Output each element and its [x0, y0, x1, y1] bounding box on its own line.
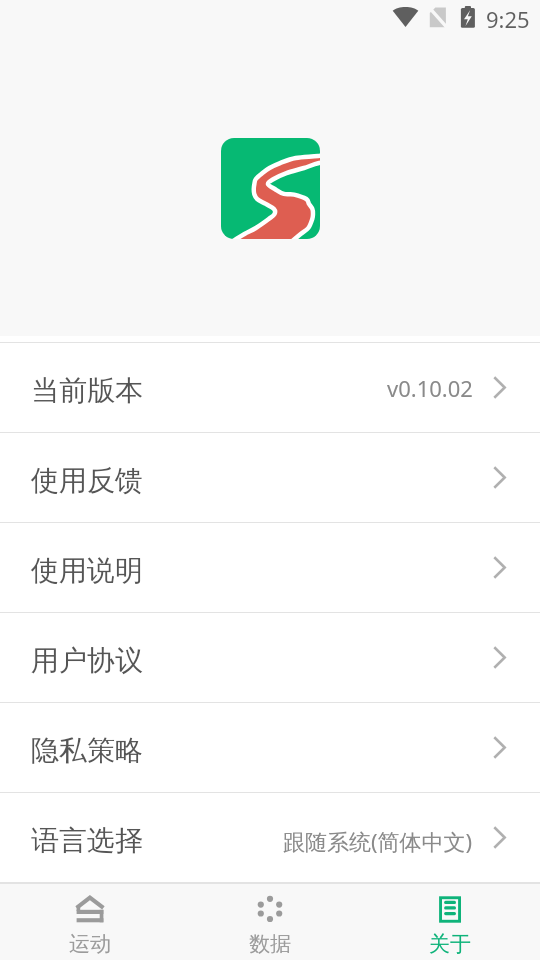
staticText: 关于	[429, 931, 471, 957]
staticText: 用户协议	[31, 643, 143, 678]
staticText: 跟随系统(简体中文)	[283, 826, 473, 856]
staticText: 使用说明	[31, 553, 143, 588]
button[interactable]: 当前版本	[0, 343, 540, 432]
staticText: 语言选择	[31, 823, 143, 858]
button[interactable]: 使用说明	[0, 523, 540, 612]
button[interactable]: 使用反馈	[0, 433, 540, 522]
button[interactable]: 隐私策略	[0, 703, 540, 792]
staticText: v0.10.02	[387, 373, 473, 403]
staticText: 数据	[249, 931, 291, 957]
button[interactable]: 语言选择	[0, 793, 540, 882]
button[interactable]: Workout	[0, 884, 180, 960]
staticText: 使用反馈	[31, 463, 143, 498]
staticText: 当前版本	[31, 373, 143, 408]
button[interactable]: 用户协议	[0, 613, 540, 702]
staticText: 运动	[69, 931, 111, 957]
button[interactable]: About	[360, 884, 540, 960]
staticText: 隐私策略	[31, 733, 143, 768]
button[interactable]: Data	[180, 884, 360, 960]
staticText: 9:25	[486, 4, 530, 34]
